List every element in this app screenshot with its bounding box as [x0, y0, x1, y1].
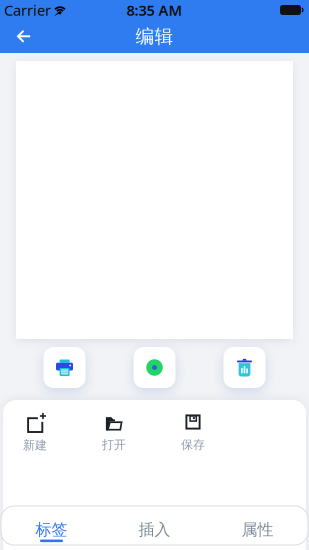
staticText: 插入	[138, 520, 170, 540]
button[interactable]: 标签	[0, 519, 103, 543]
button[interactable]: 新建	[11, 414, 59, 453]
staticText: 保存	[181, 437, 205, 452]
staticText: 编辑	[135, 25, 173, 48]
button[interactable]	[223, 347, 265, 388]
button[interactable]	[43, 347, 85, 388]
button[interactable]: 打开	[90, 414, 138, 452]
button[interactable]	[133, 347, 175, 388]
button[interactable]	[0, 20, 31, 52]
staticText: 属性	[241, 520, 273, 540]
button[interactable]: 插入	[103, 519, 206, 543]
staticText: 标签	[35, 520, 67, 540]
staticText: 新建	[23, 438, 47, 453]
button[interactable]: 保存	[169, 414, 217, 452]
staticText: 打开	[102, 437, 126, 452]
staticText: 8:35 AM	[126, 0, 182, 20]
button[interactable]: 属性	[206, 519, 309, 543]
staticText: Carrier	[4, 0, 51, 20]
